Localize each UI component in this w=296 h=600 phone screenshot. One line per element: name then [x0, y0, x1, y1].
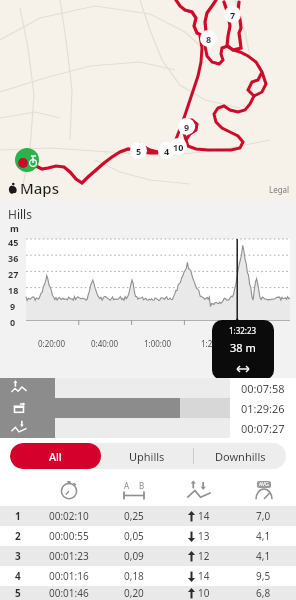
staticText: 7,0: [256, 509, 271, 523]
staticText: 1:20:: [201, 338, 220, 349]
staticText: 9,5: [256, 569, 271, 583]
button[interactable]: 8: [200, 30, 217, 47]
other: Flat: [0, 398, 38, 418]
staticText: 18: [8, 284, 19, 296]
staticText: 9: [10, 300, 16, 312]
staticText: 5: [136, 145, 142, 157]
staticText: 9: [184, 121, 190, 133]
staticText: 38 m: [230, 340, 256, 355]
staticText: A: [124, 480, 130, 491]
button[interactable]: 1: [0, 506, 296, 526]
staticText: 36: [8, 252, 19, 264]
staticText: 0,05: [124, 529, 144, 543]
staticText: 8: [206, 33, 212, 45]
staticText: Hills: [8, 206, 32, 222]
staticText: 00:01:23: [49, 549, 89, 563]
staticText: 0,20: [124, 586, 144, 600]
button[interactable]: Uphill: [0, 378, 296, 398]
button[interactable]: All: [10, 443, 101, 469]
staticText: 27: [8, 268, 19, 280]
button[interactable]: 7: [224, 6, 241, 23]
staticText: 14: [198, 569, 210, 583]
button[interactable]: Legal: [269, 184, 290, 195]
button[interactable]: Downhills: [194, 443, 286, 469]
staticText: 00:00:55: [49, 529, 89, 543]
staticText: 1:32:23: [229, 325, 257, 336]
button[interactable]: 3: [0, 546, 296, 566]
other: Downhill: [0, 418, 38, 438]
staticText: 13: [198, 529, 210, 543]
button[interactable]: 4: [0, 566, 296, 586]
button[interactable]: Flat: [0, 398, 296, 418]
staticText: B: [139, 480, 145, 491]
button[interactable]: 5: [0, 586, 296, 600]
staticText: All: [49, 449, 62, 464]
staticText: 12: [198, 549, 210, 563]
staticText: 00:07:27: [241, 421, 285, 436]
staticText: 00:01:16: [49, 569, 89, 583]
staticText: 4,1: [256, 529, 271, 543]
staticText: 0,18: [124, 569, 144, 583]
staticText: 00:02:10: [49, 509, 89, 523]
button[interactable]: 2: [0, 526, 296, 546]
staticText: 4: [15, 569, 21, 583]
staticText: 00:01:46: [49, 586, 89, 600]
other: Uphill: [0, 378, 38, 398]
staticText: 0: [10, 316, 16, 328]
button[interactable]: Uphills: [101, 443, 193, 469]
staticText: 45: [8, 236, 19, 248]
staticText: Legal: [269, 184, 290, 195]
staticText: 1: [15, 509, 21, 523]
staticText: 3: [15, 549, 21, 563]
staticText: 2: [15, 529, 21, 543]
staticText: m: [10, 222, 19, 234]
staticText: 00:07:58: [241, 381, 285, 396]
staticText: 0,09: [124, 549, 144, 563]
staticText: 4,1: [256, 549, 271, 563]
button[interactable]: 4: [158, 142, 175, 159]
staticText: 0,25: [124, 509, 144, 523]
staticText: Uphills: [129, 449, 165, 464]
staticText: 10: [198, 586, 210, 600]
button[interactable]: 9: [178, 118, 195, 135]
staticText: 0:40:00: [91, 338, 119, 349]
staticText: 14: [198, 509, 210, 523]
staticText: 01:29:26: [241, 401, 285, 416]
button[interactable]: Downhill: [0, 418, 296, 438]
staticText: 5: [15, 586, 21, 600]
button[interactable]: 5: [130, 142, 147, 159]
staticText: 4: [164, 145, 170, 157]
staticText: 10: [173, 141, 184, 153]
staticText: 7: [230, 9, 236, 21]
staticText: 0:20:00: [38, 338, 66, 349]
button[interactable]: 10: [170, 138, 187, 155]
staticText: 1:00:00: [144, 338, 172, 349]
staticText: Downhills: [215, 449, 266, 464]
staticText: Maps: [20, 178, 59, 198]
staticText: 6,8: [256, 586, 271, 600]
staticText: AVG: [259, 481, 269, 488]
